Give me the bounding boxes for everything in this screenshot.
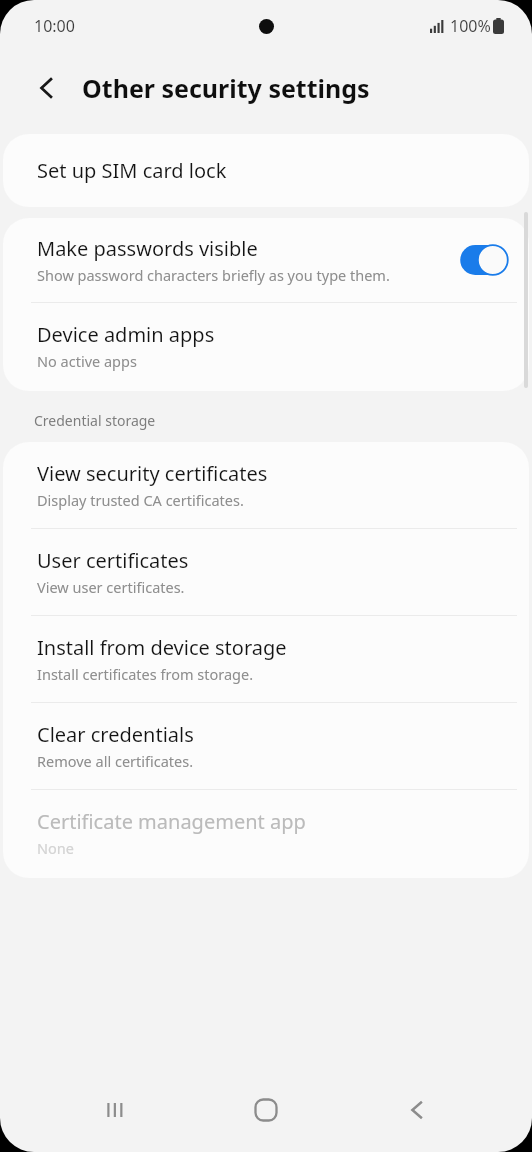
button[interactable]: Set up SIM card lock [3,134,529,207]
staticText: Credential storage [34,411,156,430]
button[interactable]: Device admin apps [3,303,529,391]
staticText: 100% [450,15,491,37]
staticText: No active apps [37,351,137,371]
button[interactable]: Make passwords visible [455,243,513,277]
button[interactable]: Install from device storage [3,616,529,702]
button[interactable]: Certificate management app [3,790,529,878]
staticText: None [37,838,74,858]
staticText: Clear credentials [37,721,194,748]
staticText: Display trusted CA certificates. [37,490,244,510]
staticText: Certificate management app [37,808,306,835]
staticText: Set up SIM card lock [37,157,227,184]
staticText: Remove all certificates. [37,751,194,771]
button[interactable]: Home [230,1074,302,1146]
button[interactable]: Recent apps [79,1074,151,1146]
button[interactable]: Back [381,1074,453,1146]
staticText: Install from device storage [37,634,287,661]
staticText: Show password characters briefly as you … [37,265,390,285]
button[interactable]: Make passwords visible [3,218,529,302]
staticText: View user certificates. [37,577,185,597]
staticText: 10:00 [34,15,75,37]
staticText: Device admin apps [37,321,215,348]
button[interactable]: Clear credentials [3,703,529,789]
staticText: View security certificates [37,460,268,487]
staticText: Install certificates from storage. [37,664,254,684]
staticText: Make passwords visible [37,235,258,262]
button[interactable]: User certificates [3,529,529,615]
staticText: Other security settings [82,71,370,105]
button[interactable]: View security certificates [3,442,529,528]
button[interactable]: Back [22,63,72,113]
staticText: User certificates [37,547,189,574]
